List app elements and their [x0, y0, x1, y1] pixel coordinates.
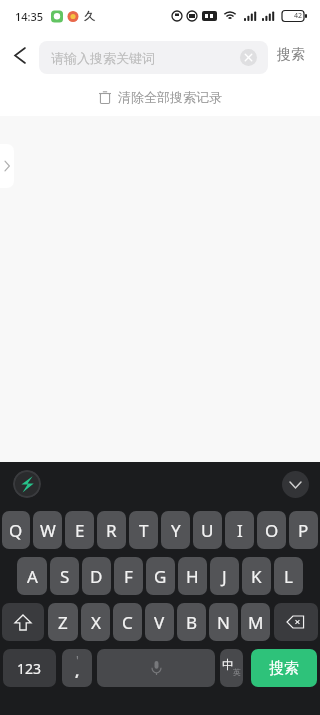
button[interactable]: 搜索	[251, 649, 317, 687]
staticText: D	[90, 565, 103, 588]
staticText: 中	[222, 657, 234, 672]
staticText: 14:35	[15, 9, 44, 24]
button[interactable]: N	[209, 603, 238, 641]
button[interactable]	[282, 471, 309, 498]
staticText: 42	[294, 11, 303, 21]
staticText: R	[106, 519, 117, 542]
button[interactable]: H	[178, 557, 207, 595]
button[interactable]: 中	[220, 649, 243, 687]
staticText: K	[251, 565, 262, 588]
button[interactable]: R	[97, 511, 126, 549]
staticText: J	[222, 565, 227, 588]
button[interactable]: Z	[48, 603, 78, 641]
staticText: Y	[171, 519, 181, 542]
button[interactable]: O	[257, 511, 286, 549]
button[interactable]: M	[241, 603, 270, 641]
button[interactable]: E	[65, 511, 94, 549]
staticText: L	[284, 565, 293, 588]
staticText: T	[139, 519, 149, 542]
button[interactable]: P	[289, 511, 318, 549]
staticText: V	[154, 611, 165, 634]
button[interactable]: J	[210, 557, 239, 595]
staticText: W	[40, 519, 56, 542]
button[interactable]	[6, 41, 34, 69]
button[interactable]: I	[225, 511, 254, 549]
button[interactable]: Y	[161, 511, 190, 549]
staticText: O	[265, 519, 279, 542]
button[interactable]: F	[114, 557, 143, 595]
button[interactable]	[0, 144, 14, 188]
staticText: F	[124, 565, 133, 588]
staticText: M	[248, 611, 264, 634]
button[interactable]: A	[17, 557, 47, 595]
staticText: B	[186, 611, 198, 634]
button[interactable]: Q	[2, 511, 30, 549]
button[interactable]: W	[33, 511, 62, 549]
button[interactable]: '	[62, 649, 92, 687]
staticText: S	[60, 565, 70, 588]
button[interactable]: K	[242, 557, 271, 595]
staticText: 搜索	[269, 659, 299, 678]
button[interactable]: D	[82, 557, 111, 595]
staticText: X	[91, 611, 101, 634]
staticText: 清除全部搜索记录	[118, 89, 222, 105]
button[interactable]	[13, 470, 41, 498]
button[interactable]: G	[146, 557, 175, 595]
button[interactable]: 123	[3, 649, 56, 687]
staticText: P	[298, 519, 309, 542]
staticText: I	[237, 519, 243, 542]
button[interactable]: L	[274, 557, 303, 595]
button[interactable]: C	[113, 603, 142, 641]
staticText: Q	[9, 519, 23, 542]
staticText: 搜索	[277, 46, 305, 64]
staticText: 123	[17, 659, 42, 678]
button[interactable]: S	[50, 557, 79, 595]
staticText: 请输入搜索关键词	[51, 50, 155, 66]
button[interactable]	[97, 649, 215, 687]
staticText: A	[27, 565, 38, 588]
staticText: 久	[84, 9, 95, 23]
button[interactable]	[274, 603, 318, 641]
staticText: '	[76, 652, 79, 668]
staticText: H	[186, 565, 199, 588]
staticText: C	[122, 611, 133, 634]
button[interactable]: B	[177, 603, 206, 641]
button[interactable]: 搜索	[270, 38, 312, 72]
button[interactable]: 请输入搜索关键词	[39, 41, 268, 74]
button[interactable]: V	[145, 603, 174, 641]
staticText: U	[201, 519, 214, 542]
button[interactable]: T	[129, 511, 158, 549]
staticText: E	[75, 519, 85, 542]
staticText: 英	[233, 667, 241, 677]
staticText: N	[217, 611, 230, 634]
staticText: G	[154, 565, 167, 588]
staticText: Z	[58, 611, 68, 634]
staticText: ,	[75, 660, 80, 680]
button[interactable]: 清除全部搜索记录	[0, 78, 320, 116]
button[interactable]: U	[193, 511, 222, 549]
button[interactable]: X	[81, 603, 110, 641]
button[interactable]	[2, 603, 44, 641]
